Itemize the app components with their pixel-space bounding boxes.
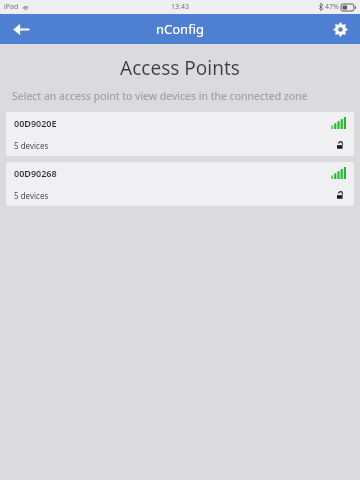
staticText: 00D9020E	[14, 117, 57, 129]
button[interactable]: 00D90268	[6, 162, 354, 206]
button[interactable]: Settings	[320, 14, 360, 44]
button[interactable]: Back	[0, 14, 42, 44]
staticText: 5 devices	[14, 140, 49, 151]
staticText: nConfig	[156, 20, 204, 38]
staticText: Access Points	[0, 55, 360, 81]
staticText: iPad	[4, 2, 19, 12]
staticText: 5 devices	[14, 190, 49, 201]
button[interactable]: 00D9020E	[6, 112, 354, 156]
staticText: 00D90268	[14, 167, 57, 179]
staticText: 13:43	[171, 2, 189, 12]
staticText: 47%	[325, 2, 339, 12]
staticText: Select an access point to view devices i…	[12, 89, 308, 103]
